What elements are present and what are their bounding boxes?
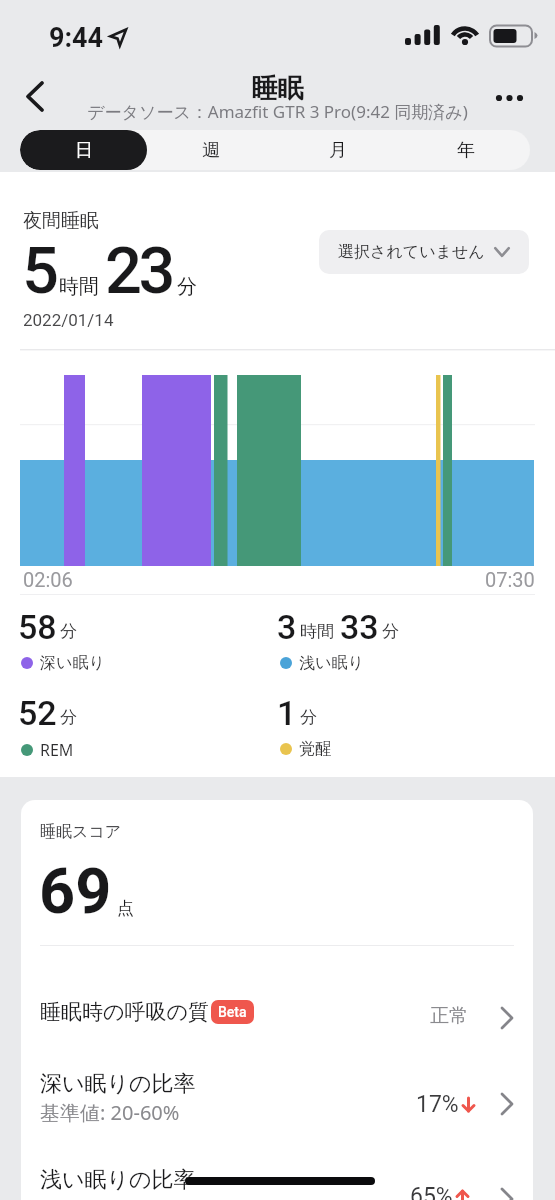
staticText: 深い眠りの比率 bbox=[40, 1070, 196, 1098]
staticText: 分 bbox=[177, 274, 197, 299]
staticText: 夜間睡眠 bbox=[23, 209, 99, 233]
staticText: 基準値: 20-60% bbox=[40, 1099, 180, 1126]
staticText: REM bbox=[40, 739, 74, 761]
button[interactable]: 睡眠時の呼吸の質 bbox=[21, 980, 533, 1046]
staticText: 分 bbox=[60, 621, 77, 642]
button[interactable]: 年 bbox=[402, 130, 530, 170]
staticText: 1 bbox=[277, 693, 297, 733]
staticText: 07:30 bbox=[485, 568, 535, 591]
staticText: 52 bbox=[18, 693, 57, 733]
staticText: 年 bbox=[457, 139, 475, 162]
staticText: 選択されていません bbox=[338, 242, 485, 262]
button[interactable]: 週 bbox=[147, 130, 274, 170]
staticText: 覚醒 bbox=[299, 739, 331, 759]
staticText: 正常 bbox=[430, 1004, 468, 1028]
staticText: データソース：Amazfit GTR 3 Pro(9:42 同期済み) bbox=[0, 100, 555, 123]
staticText: 時間 bbox=[59, 274, 99, 299]
staticText: 65% bbox=[410, 1183, 453, 1200]
staticText: 睡眠スコア bbox=[40, 822, 122, 842]
staticText: 分 bbox=[382, 621, 399, 642]
button[interactable]: 深い眠りの比率 bbox=[21, 1055, 533, 1137]
button[interactable]: 日 bbox=[20, 130, 147, 170]
staticText: 分 bbox=[300, 707, 317, 728]
button[interactable] bbox=[492, 86, 534, 108]
staticText: 33 bbox=[340, 607, 379, 647]
staticText: 23 bbox=[105, 233, 172, 309]
staticText: 2022/01/14 bbox=[23, 310, 114, 330]
staticText: 睡眠 bbox=[0, 72, 555, 105]
staticText: 月 bbox=[329, 139, 347, 162]
staticText: Beta bbox=[218, 1004, 247, 1020]
staticText: 時間 bbox=[300, 621, 334, 642]
staticText: 日 bbox=[75, 139, 93, 162]
staticText: 深い眠り bbox=[40, 653, 105, 673]
button[interactable]: 浅い眠りの比率 bbox=[21, 1152, 533, 1200]
staticText: 02:06 bbox=[23, 568, 73, 591]
button[interactable] bbox=[18, 78, 54, 114]
staticText: 5 bbox=[22, 233, 56, 309]
staticText: 3 bbox=[277, 607, 297, 647]
staticText: 浅い眠りの比率 bbox=[40, 1166, 196, 1194]
staticText: 浅い眠り bbox=[299, 653, 364, 673]
staticText: 69 bbox=[39, 855, 112, 929]
staticText: 58 bbox=[18, 607, 57, 647]
staticText: 分 bbox=[60, 707, 77, 728]
staticText: 9:44 bbox=[49, 22, 104, 54]
staticText: 17% bbox=[416, 1091, 459, 1118]
button[interactable]: 選択されていません bbox=[319, 230, 529, 274]
staticText: 睡眠時の呼吸の質 bbox=[40, 999, 209, 1025]
button[interactable]: 月 bbox=[274, 130, 402, 170]
staticText: 点 bbox=[117, 898, 134, 919]
staticText: 週 bbox=[202, 139, 220, 162]
